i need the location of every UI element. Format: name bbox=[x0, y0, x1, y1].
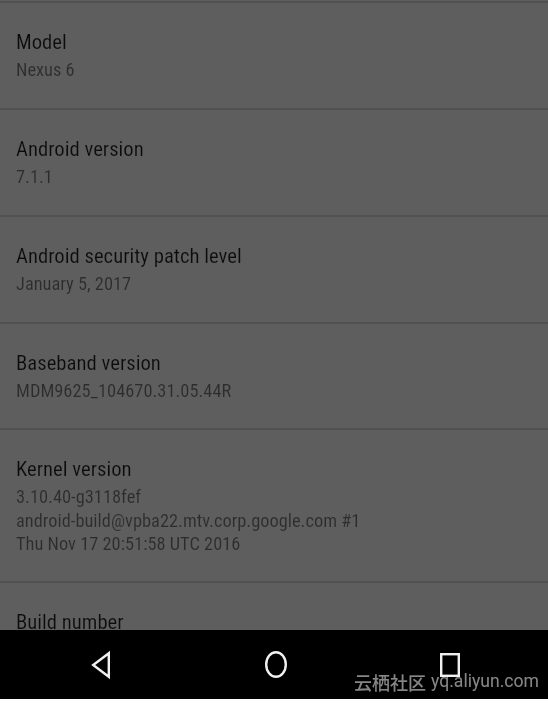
button[interactable]: Back bbox=[58, 636, 143, 693]
button[interactable]: Baseband version bbox=[0, 322, 548, 428]
staticText: 7.1.1 bbox=[16, 166, 53, 188]
button[interactable]: Android version bbox=[0, 108, 548, 215]
staticText: Baseband version bbox=[16, 351, 161, 375]
button[interactable]: Model bbox=[0, 1, 548, 108]
staticText: Android security patch level bbox=[16, 244, 242, 268]
staticText: MDM9625_104670.31.05.44R bbox=[16, 380, 232, 402]
staticText: Android version bbox=[16, 137, 144, 161]
staticText: January 5, 2017 bbox=[16, 273, 132, 295]
staticText: Thu Nov 17 20:51:58 UTC 2016 bbox=[16, 533, 241, 555]
staticText: 云栖社区 bbox=[354, 669, 426, 695]
staticText: 3.10.40-g3118fef bbox=[16, 486, 142, 508]
staticText: Model bbox=[16, 30, 67, 54]
staticText: android-build@vpba22.mtv.corp.google.com… bbox=[16, 510, 361, 532]
staticText: Kernel version bbox=[16, 457, 132, 481]
button[interactable]: Build number bbox=[0, 581, 548, 691]
button[interactable]: Home bbox=[233, 636, 318, 693]
staticText: yq.aliyun.com bbox=[431, 671, 540, 692]
button[interactable]: Recent apps bbox=[407, 636, 492, 693]
button[interactable]: Kernel version bbox=[0, 428, 548, 581]
button[interactable]: Android security patch level bbox=[0, 215, 548, 322]
staticText: Build number bbox=[16, 610, 124, 634]
staticText: Nexus 6 bbox=[16, 59, 75, 81]
